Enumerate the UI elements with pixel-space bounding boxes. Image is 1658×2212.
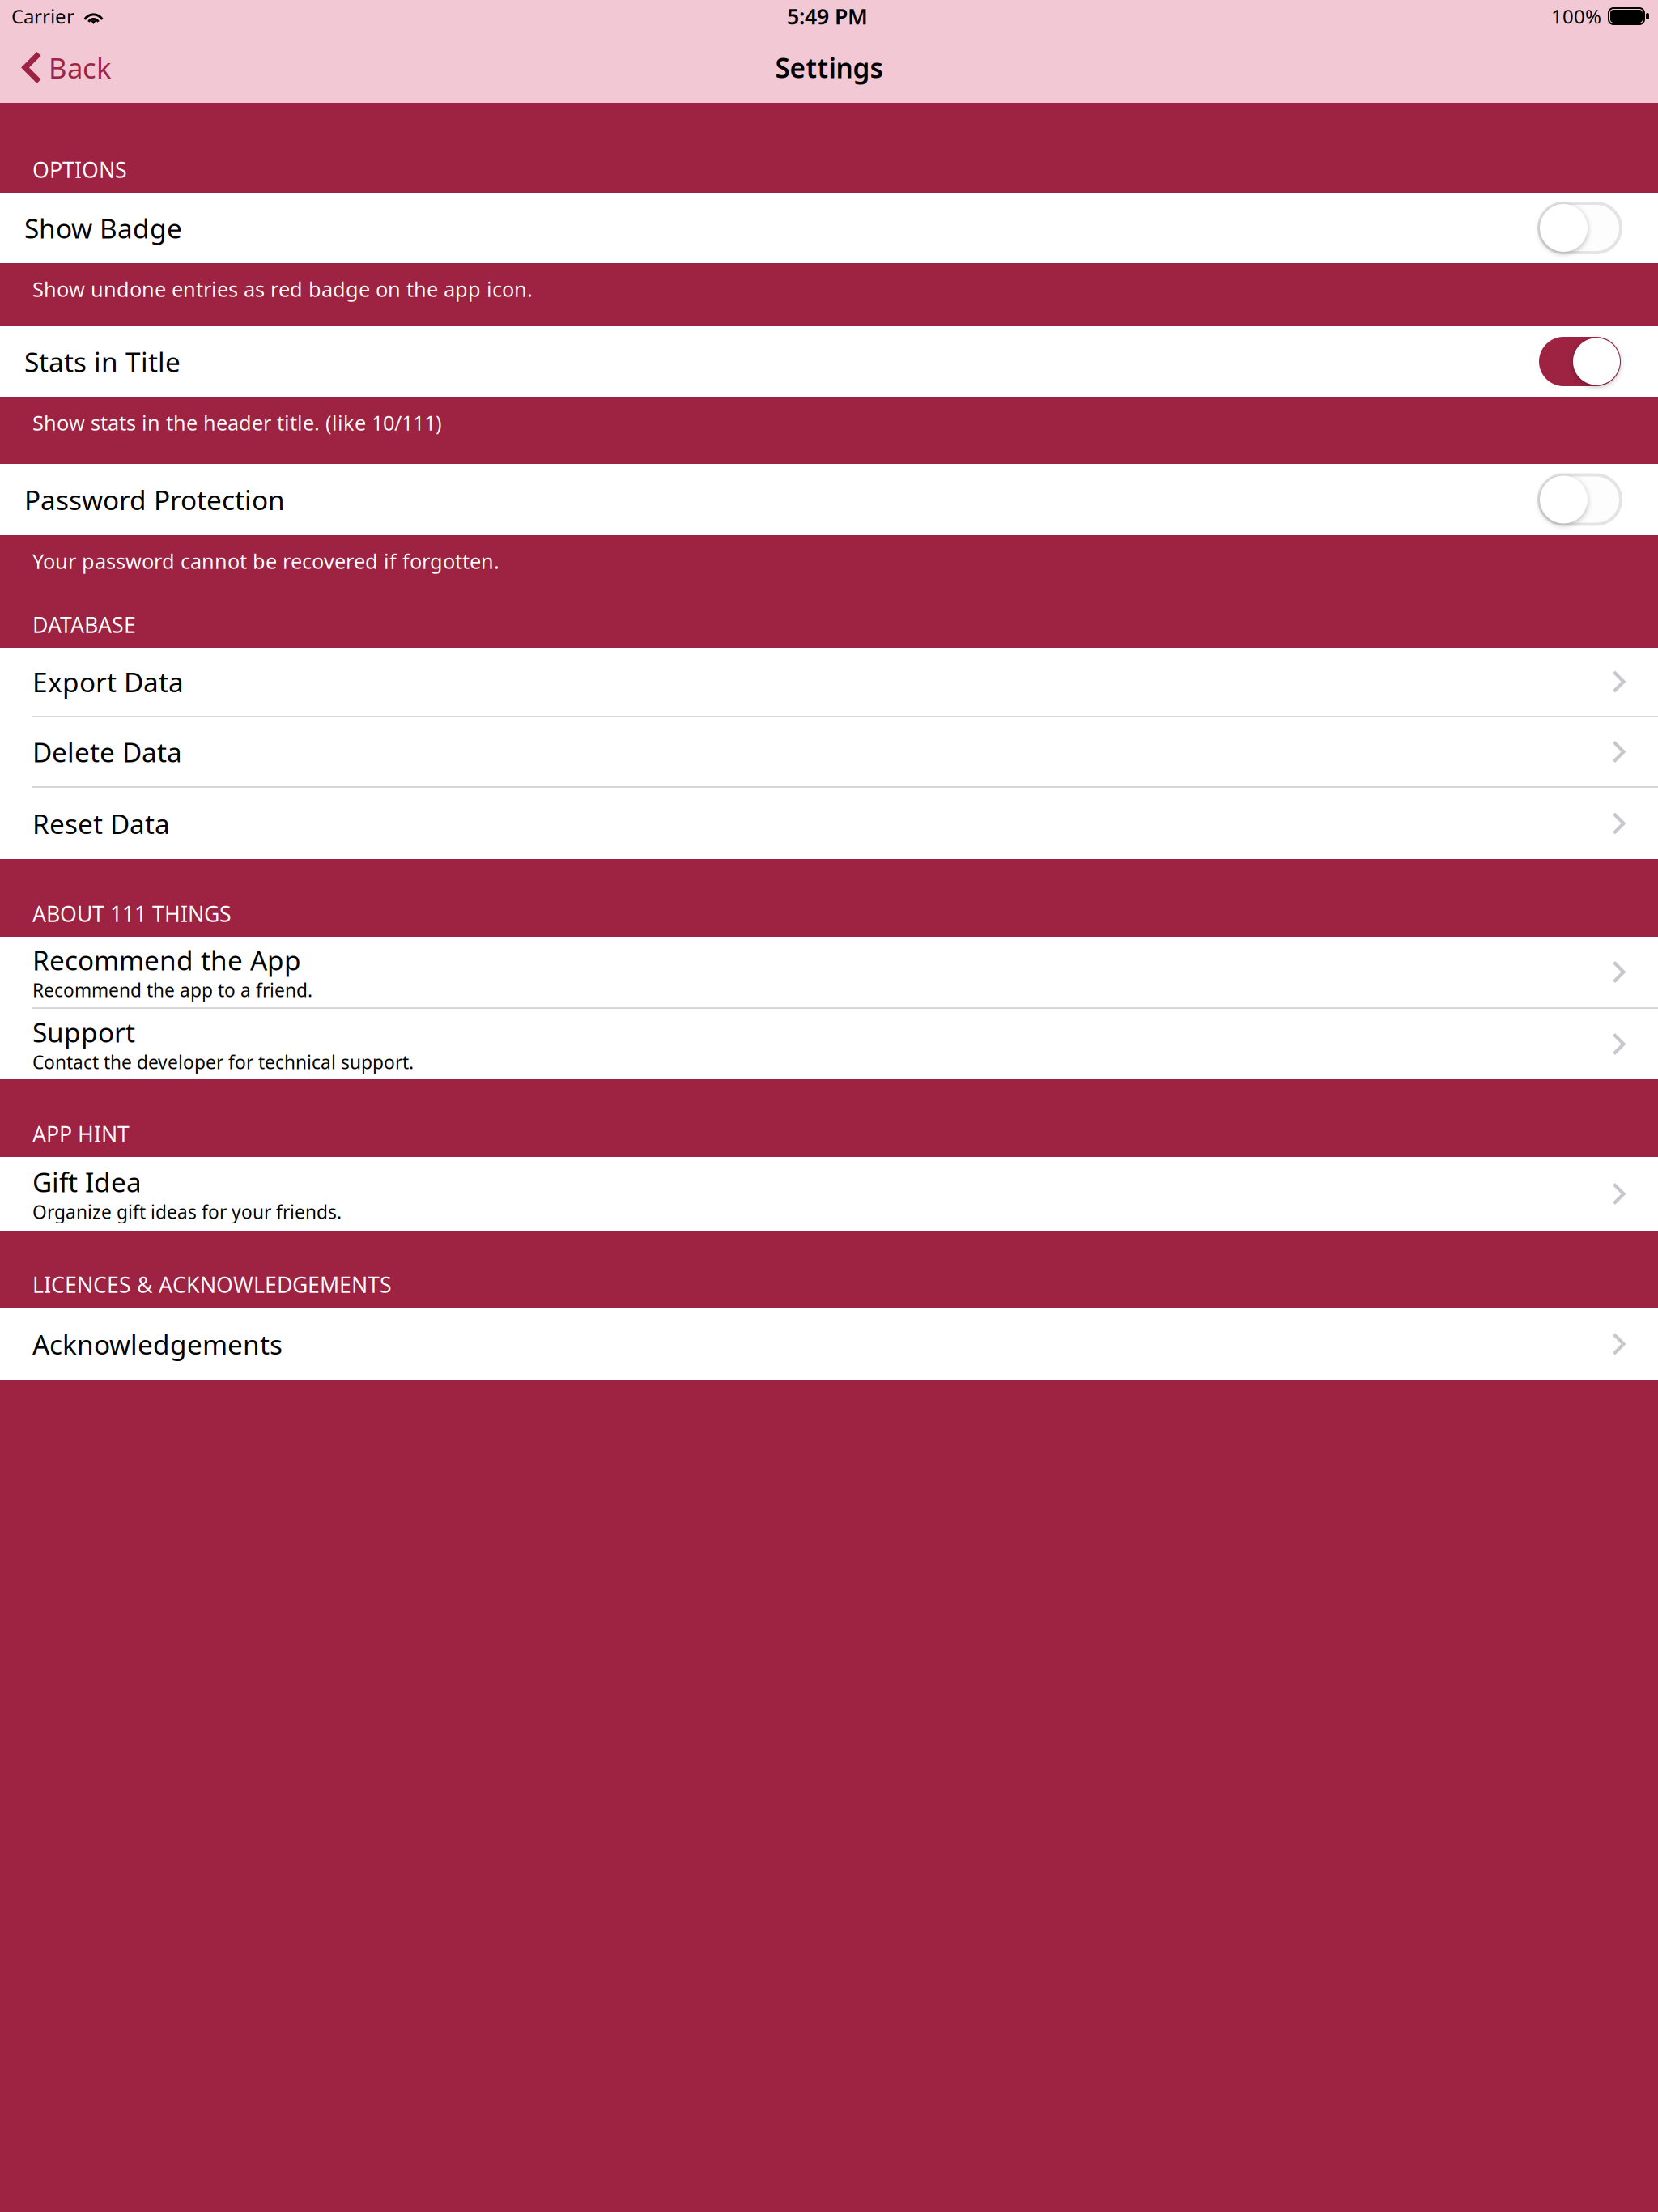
button[interactable]: Export Data: [0, 648, 1658, 716]
staticText: Gift Idea: [32, 1164, 142, 1200]
button[interactable]: Password Protection, off: [1539, 475, 1621, 524]
button[interactable]: Support: [0, 1009, 1658, 1079]
staticText: Show Badge: [24, 210, 182, 246]
button[interactable]: Stats in Title, on: [1539, 337, 1621, 386]
staticText: Recommend the App: [32, 942, 301, 978]
button[interactable]: Back: [0, 39, 130, 96]
staticText: Reset Data: [32, 806, 170, 841]
staticText: Support: [32, 1014, 135, 1050]
staticText: Your password cannot be recovered if for…: [32, 547, 500, 575]
staticText: Show undone entries as red badge on the …: [32, 275, 533, 302]
button[interactable]: Stats in Title: [0, 326, 1658, 397]
staticText: Stats in Title: [24, 344, 181, 379]
staticText: Carrier: [11, 3, 74, 29]
button[interactable]: Show Badge, off: [1539, 203, 1621, 253]
staticText: Organize gift ideas for your friends.: [32, 1200, 342, 1224]
staticText: Delete Data: [32, 734, 182, 770]
staticText: Contact the developer for technical supp…: [32, 1050, 414, 1074]
button[interactable]: Gift Idea: [0, 1157, 1658, 1231]
staticText: Settings: [775, 50, 883, 86]
button[interactable]: Delete Data: [0, 717, 1658, 786]
staticText: 5:49 PM: [787, 2, 868, 31]
staticText: APP HINT: [32, 1119, 130, 1148]
button[interactable]: Show Badge: [0, 193, 1658, 263]
staticText: Recommend the app to a friend.: [32, 978, 312, 1002]
staticText: OPTIONS: [32, 155, 127, 184]
staticText: Export Data: [32, 664, 184, 700]
button[interactable]: Reset Data: [0, 788, 1658, 859]
staticText: LICENCES & ACKNOWLEDGEMENTS: [32, 1270, 392, 1299]
button[interactable]: Password Protection: [0, 464, 1658, 535]
staticText: ABOUT 111 THINGS: [32, 899, 232, 928]
staticText: Acknowledgements: [32, 1326, 283, 1362]
staticText: 100%: [1551, 3, 1601, 29]
staticText: DATABASE: [32, 610, 136, 639]
staticText: Show stats in the header title. (like 10…: [32, 409, 442, 436]
staticText: Password Protection: [24, 482, 285, 518]
button[interactable]: Acknowledgements: [0, 1308, 1658, 1380]
button[interactable]: Recommend the App: [0, 937, 1658, 1007]
staticText: Back: [49, 49, 112, 86]
